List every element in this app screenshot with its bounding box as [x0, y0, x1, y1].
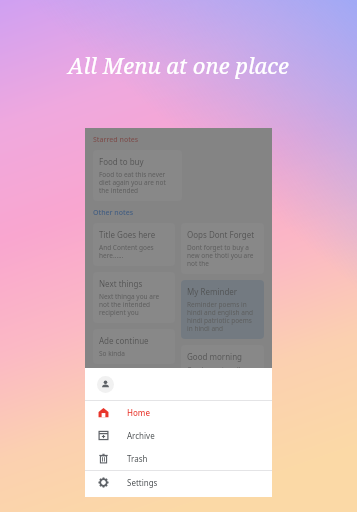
button[interactable]: Archive — [85, 424, 272, 447]
staticText: My Reminder — [187, 286, 238, 297]
button[interactable]: Trash — [85, 447, 272, 470]
staticText: Archive — [127, 430, 155, 441]
staticText: Food to buy — [99, 156, 144, 167]
button[interactable]: Oops Dont Forget — [181, 223, 264, 274]
staticText: Ade continue — [99, 335, 149, 346]
button[interactable]: Account — [85, 368, 272, 400]
staticText: Food to eat this never diet again you ar… — [99, 170, 176, 195]
staticText: Good morning all — [187, 365, 241, 374]
button[interactable]: Food to buy — [93, 150, 182, 201]
staticText: Next things — [99, 278, 143, 289]
staticText: Oops Dont Forget — [187, 229, 255, 240]
staticText: Starred notes — [93, 135, 139, 145]
staticText: Settings — [127, 477, 158, 488]
staticText: Good morning — [187, 351, 242, 362]
staticText: Title Goes here — [99, 229, 156, 240]
button[interactable]: Good morning — [181, 345, 264, 380]
button[interactable]: Home — [85, 401, 272, 424]
button[interactable]: Settings — [85, 471, 272, 494]
staticText: Dont forget to buy a new one thoti you a… — [187, 243, 258, 268]
button[interactable]: Ade continue — [93, 329, 175, 364]
staticText: Reminder poems in hindi and english and … — [187, 300, 258, 333]
staticText: Next thinga you are not the intended rec… — [99, 292, 169, 317]
staticText: Home — [127, 407, 151, 418]
button[interactable]: Next things — [93, 272, 175, 323]
staticText: Other notes — [93, 208, 134, 218]
staticText: Trash — [127, 453, 148, 464]
staticText: So kinda — [99, 349, 126, 358]
button[interactable]: My Reminder — [181, 280, 264, 339]
staticText: All Menu at one place — [68, 50, 289, 80]
staticText: And Content goes here...... — [99, 243, 169, 260]
button[interactable]: Title Goes here — [93, 223, 175, 266]
